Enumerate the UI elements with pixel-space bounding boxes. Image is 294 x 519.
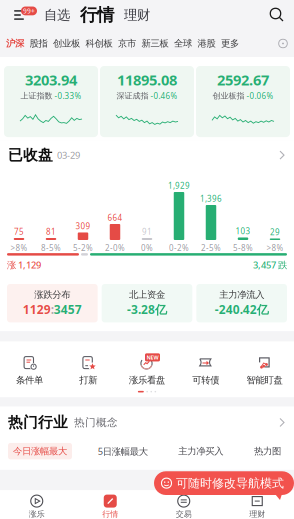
button[interactable]: 涨乐 [0,495,73,519]
staticText: -240.42亿 [215,301,269,317]
staticText: 港股 [197,38,215,49]
staticText: 5-8% [233,242,253,253]
staticText: 科创板 [85,38,112,49]
button[interactable]: 可转债 [176,354,235,386]
staticText: 股指 [29,38,47,49]
button[interactable]: 热门行业 [8,413,68,431]
button[interactable]: 5日涨幅最大 [93,442,153,460]
staticText: 2-0% [105,242,125,253]
staticText: 664 [107,212,122,223]
staticText: -0.06% [246,90,273,101]
staticText: 理财 [124,7,150,23]
button[interactable]: 热门概念 [74,416,118,429]
button[interactable]: 行情 [75,4,119,26]
button[interactable]: 创业板 [47,38,80,49]
staticText: 5日涨幅最大 [98,445,148,457]
staticText: 理财 [249,509,265,519]
staticText: 今日涨幅最大 [13,445,67,457]
button[interactable]: 科创板 [80,38,112,49]
staticText: 行情 [102,509,118,519]
staticText: >8% [10,242,27,253]
staticText: 京市 [118,38,136,49]
staticText: 涨 1,129 [7,259,41,271]
staticText: 2-5% [201,242,221,253]
staticText: 91 [142,226,152,237]
button[interactable]: 沪深 [6,38,24,49]
staticText: -0.46% [150,90,177,101]
staticText: -3.28亿 [127,301,167,317]
staticText: 新三板 [141,38,168,49]
staticText: 8-5% [41,242,61,253]
button[interactable]: 理财 [220,495,294,519]
button[interactable]: 港股 [192,38,215,49]
staticText: 81 [46,226,56,237]
button[interactable]: 条件单 [0,354,59,386]
button[interactable]: 北上资金 [102,284,192,322]
button[interactable]: NEW [118,354,176,386]
staticText: 打新 [79,374,97,386]
staticText: 已收盘 [8,146,53,164]
button[interactable]: 更多 [215,38,239,49]
staticText: 自选 [44,7,70,23]
staticText: 主力净买入 [178,445,223,457]
staticText: 2592.67 [217,70,269,89]
staticText: 涨乐看盘 [129,374,165,386]
staticText: 309 [75,221,90,231]
staticText: >8% [266,242,283,253]
staticText: 99+ [23,6,35,15]
button[interactable]: 搜索 [268,6,286,24]
staticText: 智能盯盘 [247,374,283,386]
button[interactable]: 设置 [278,38,288,48]
button[interactable]: 主力净流入 [196,284,287,322]
staticText: 创业板 [53,38,80,49]
button[interactable]: 2592.67 [196,66,290,137]
button[interactable]: 自选 [39,7,75,23]
staticText: 75 [14,226,24,237]
staticText: 0% [141,242,153,253]
button[interactable]: 已收盘 [0,140,294,170]
staticText: 行情 [80,4,114,26]
staticText: 全球 [174,38,192,49]
button[interactable]: 涨跌分布 [7,284,98,322]
staticText: 1129 [23,301,51,317]
staticText: NEW [146,354,158,361]
staticText: : [51,301,54,317]
button[interactable]: 理财 [119,7,155,23]
staticText: 上证指数 [20,91,52,101]
staticText: 29 [270,227,280,237]
button[interactable]: 智能盯盘 [235,354,294,386]
staticText: 涨乐 [29,509,45,519]
staticText: 更多 [221,38,239,49]
button[interactable]: 主力净买入 [173,443,228,459]
button[interactable]: 3203.94 [4,66,98,137]
staticText: 涨跌分布 [34,289,70,300]
button[interactable]: 11895.08 [100,66,194,137]
staticText: -0.33% [54,90,81,101]
button[interactable]: 今日涨幅最大 [8,443,72,459]
staticText: 条件单 [16,374,43,386]
staticText: 深证成指 [116,91,148,101]
button[interactable]: 菜单 [8,7,32,23]
staticText: 可转债 [192,374,219,386]
button[interactable]: 全球 [168,38,192,49]
staticText: 3457 [54,301,82,317]
button[interactable]: 行情 [73,495,147,519]
staticText: 可随时修改导航模式 [176,476,284,490]
button[interactable]: 新三板 [136,38,168,49]
staticText: 1,929 [168,180,190,191]
button[interactable]: 热力图 [249,443,286,459]
button[interactable]: 股指 [24,38,47,49]
staticText: 热门行业 [8,413,68,431]
staticText: 0-2% [169,242,189,253]
staticText: 主力净流入 [219,289,264,300]
staticText: 沪深 [6,38,24,49]
button[interactable]: 京市 [112,38,136,49]
button[interactable]: 交易 [147,495,220,519]
button[interactable]: 可随时修改导航模式 [154,471,294,495]
button[interactable]: 打新 [59,354,118,386]
staticText: 3,457 跌 [253,259,287,271]
staticText: 热门概念 [74,416,118,429]
staticText: 交易 [176,509,192,519]
staticText: 3203.94 [25,70,77,89]
staticText: 103 [235,226,250,236]
